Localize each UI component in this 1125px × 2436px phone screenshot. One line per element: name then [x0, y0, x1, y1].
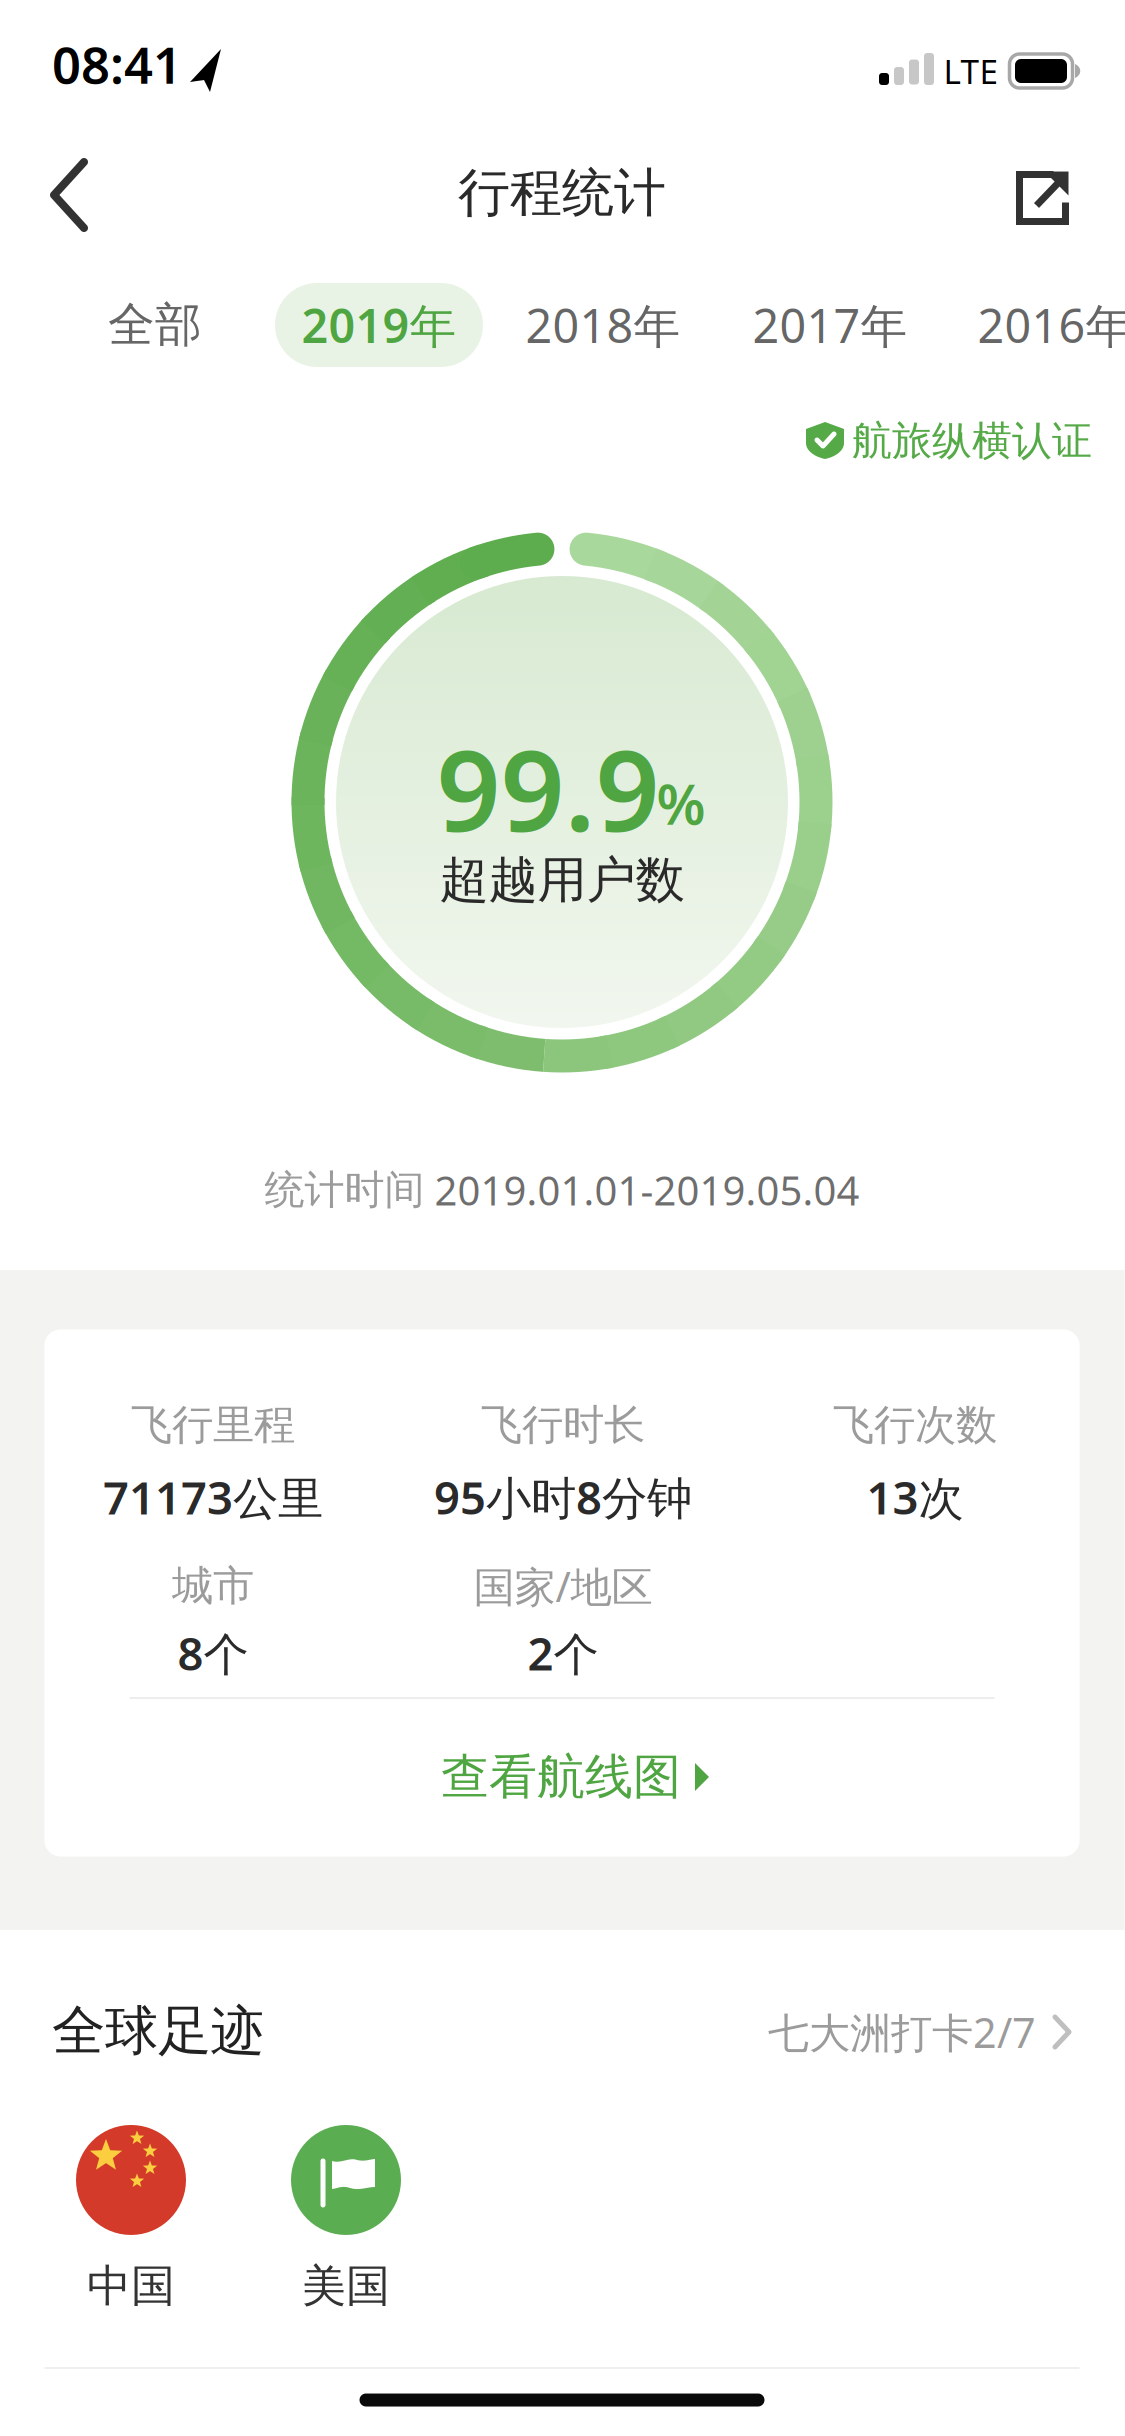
button[interactable]: 2016年	[957, 274, 1125, 376]
button[interactable]: 2017年	[732, 274, 927, 376]
button[interactable]: 全部	[88, 276, 222, 374]
staticText: 行程统计	[458, 161, 666, 225]
staticText: 统计时间	[264, 1165, 424, 1214]
staticText: 航旅纵横认证	[852, 416, 1092, 465]
staticText: 99.9	[436, 714, 659, 862]
staticText: 中国	[87, 2259, 175, 2313]
staticText: 2016年	[977, 294, 1125, 356]
staticText: 13次	[866, 1467, 963, 1527]
staticText: 95小时8分钟	[434, 1467, 692, 1527]
staticText: 08:41	[52, 30, 182, 98]
staticText: 71173公里	[103, 1467, 323, 1527]
staticText: 美国	[302, 2259, 390, 2313]
staticText: 飞行时长	[481, 1400, 645, 1450]
staticText: 飞行里程	[131, 1400, 295, 1450]
staticText: 城市	[172, 1561, 254, 1611]
staticText: LTE	[943, 49, 998, 93]
button[interactable]: 2018年	[505, 274, 700, 376]
button[interactable]: 查看航线图	[429, 1735, 723, 1818]
staticText: 超越用户数	[439, 850, 684, 910]
staticText: 8个	[177, 1623, 248, 1683]
button[interactable]: 2019年	[275, 283, 483, 367]
button[interactable]: Share	[1015, 166, 1072, 229]
button[interactable]: 美国	[291, 2125, 401, 2313]
button[interactable]: 中国	[76, 2125, 186, 2313]
staticText: 七大洲打卡2/7	[768, 2005, 1036, 2059]
staticText: 全部	[108, 296, 202, 354]
staticText: 飞行次数	[833, 1400, 997, 1450]
staticText: 2017年	[752, 294, 907, 356]
staticText: 2018年	[525, 294, 680, 356]
staticText: 2019年	[301, 294, 456, 356]
button[interactable]: Back	[44, 154, 134, 238]
staticText: %	[656, 766, 705, 840]
staticText: 2019.01.01-2019.05.04	[434, 1163, 859, 1216]
staticText: 2个	[527, 1623, 598, 1683]
staticText: 查看航线图	[441, 1747, 681, 1806]
staticText: 全球足迹	[52, 1998, 264, 2064]
staticText: 国家/地区	[473, 1559, 652, 1613]
button[interactable]: 七大洲打卡2/7	[768, 2005, 1072, 2059]
